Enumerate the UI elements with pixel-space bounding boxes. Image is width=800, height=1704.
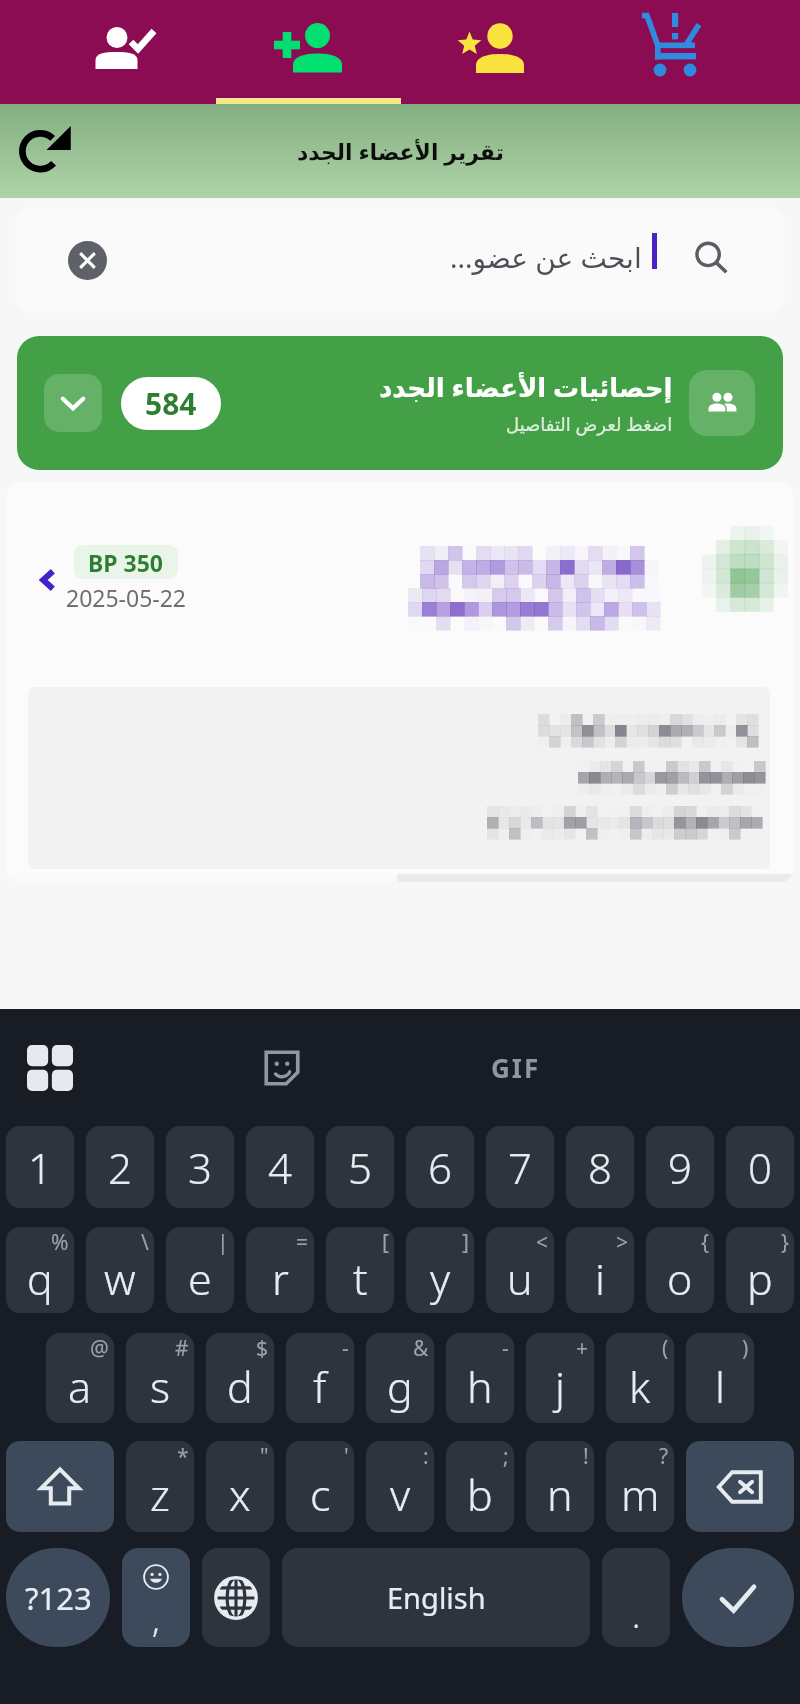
staticText: * [177, 1442, 189, 1471]
button[interactable]: Backspace [686, 1441, 794, 1532]
staticText: GIF [491, 1050, 541, 1085]
button[interactable]: 8 [566, 1126, 634, 1208]
staticText: | [217, 1228, 229, 1257]
staticText: 1 [28, 1139, 52, 1196]
button[interactable]: 7 [486, 1126, 554, 1208]
button[interactable]: 9 [646, 1126, 714, 1208]
button[interactable]: l [686, 1333, 754, 1423]
staticText: c [310, 1465, 331, 1524]
staticText: > [616, 1228, 629, 1257]
staticText: < [536, 1228, 549, 1257]
staticText: 9 [668, 1139, 692, 1196]
button[interactable]: i [566, 1227, 634, 1313]
button[interactable]: 5 [326, 1126, 394, 1208]
button[interactable]: Expand statistics [17, 336, 783, 470]
staticText: ?123 [25, 1577, 92, 1619]
button[interactable]: Cart alerts [600, 0, 800, 104]
button[interactable]: English [282, 1548, 590, 1647]
button[interactable]: Refresh [12, 118, 78, 184]
button[interactable]: a [46, 1333, 114, 1423]
button[interactable]: j [526, 1333, 594, 1423]
button[interactable]: . [602, 1548, 670, 1647]
staticText: d [227, 1357, 253, 1416]
button[interactable]: Members checked [0, 0, 200, 104]
button[interactable]: Open details [28, 560, 68, 600]
staticText: k [629, 1357, 651, 1416]
button[interactable]: ?123 [6, 1548, 110, 1647]
button[interactable]: 3 [166, 1126, 234, 1208]
staticText: b [467, 1465, 493, 1524]
staticText: . [632, 1592, 641, 1638]
button[interactable]: r [246, 1227, 314, 1313]
staticText: r [272, 1249, 289, 1308]
button[interactable]: p [726, 1227, 794, 1313]
staticText: " [260, 1442, 269, 1471]
staticText: ( [662, 1334, 669, 1363]
button[interactable]: GIF [491, 1050, 541, 1085]
staticText: ; [503, 1442, 509, 1471]
staticText: ? [659, 1442, 669, 1471]
button[interactable]: n [526, 1441, 594, 1532]
button[interactable]: o [646, 1227, 714, 1313]
button[interactable]: Emoji and comma [122, 1548, 190, 1647]
staticText: h [467, 1357, 493, 1416]
staticText: n [547, 1465, 573, 1524]
button[interactable]: Clear search [68, 241, 107, 280]
staticText: 3 [188, 1139, 212, 1196]
button[interactable]: u [486, 1227, 554, 1313]
staticText: ! [583, 1442, 589, 1471]
button[interactable]: Clear search [15, 207, 785, 313]
staticText: o [667, 1249, 693, 1308]
staticText: 4 [268, 1139, 292, 1196]
staticText: ابحث عن عضو... [450, 238, 665, 276]
button[interactable]: g [366, 1333, 434, 1423]
button[interactable]: q [6, 1227, 74, 1313]
button[interactable]: Change language [202, 1548, 270, 1647]
button[interactable]: Add member [200, 0, 400, 104]
button[interactable]: Keyboard menu [24, 1042, 76, 1094]
button[interactable]: 4 [246, 1126, 314, 1208]
staticText: } [781, 1228, 789, 1257]
button[interactable]: 6 [406, 1126, 474, 1208]
staticText: 584 [145, 383, 197, 424]
staticText: l [715, 1357, 725, 1416]
button[interactable]: v [366, 1441, 434, 1532]
button[interactable]: b [446, 1441, 514, 1532]
button[interactable]: Shift [6, 1441, 114, 1532]
button[interactable]: x [206, 1441, 274, 1532]
staticText: [ [382, 1228, 389, 1257]
button[interactable]: w [86, 1227, 154, 1313]
button[interactable]: 1 [6, 1126, 74, 1208]
staticText: 2025-05-22 [60, 582, 192, 613]
button[interactable]: d [206, 1333, 274, 1423]
staticText: تقرير الأعضاء الجدد [297, 136, 504, 166]
button[interactable]: Expand statistics [44, 374, 102, 432]
button[interactable]: 2 [86, 1126, 154, 1208]
staticText: e [188, 1249, 212, 1308]
staticText: @ [90, 1334, 109, 1363]
staticText: \ [141, 1228, 149, 1257]
staticText: + [576, 1334, 589, 1363]
button[interactable]: z [126, 1441, 194, 1532]
staticText: : [423, 1442, 429, 1471]
staticText: v [390, 1465, 411, 1524]
button[interactable]: e [166, 1227, 234, 1313]
staticText: { [701, 1228, 709, 1257]
staticText: 2 [108, 1139, 132, 1196]
button[interactable]: m [606, 1441, 674, 1532]
staticText: إحصائيات الأعضاء الجدد [379, 369, 673, 404]
button[interactable]: f [286, 1333, 354, 1423]
staticText: 5 [348, 1139, 372, 1196]
button[interactable]: Starred member [400, 0, 600, 104]
button[interactable]: h [446, 1333, 514, 1423]
button[interactable]: 0 [726, 1126, 794, 1208]
staticText: & [413, 1334, 429, 1363]
button[interactable]: k [606, 1333, 674, 1423]
button[interactable]: s [126, 1333, 194, 1423]
button[interactable]: Enter [682, 1548, 794, 1647]
button[interactable]: y [406, 1227, 474, 1313]
button[interactable]: t [326, 1227, 394, 1313]
button[interactable]: c [286, 1441, 354, 1532]
button[interactable]: Stickers [256, 1042, 308, 1094]
staticText: a [68, 1357, 92, 1416]
